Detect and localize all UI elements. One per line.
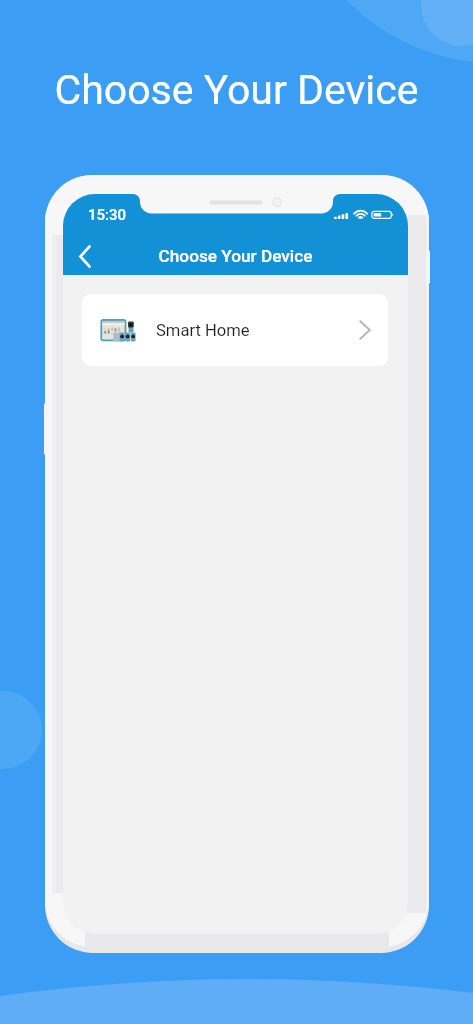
staticText: 15:30 bbox=[88, 206, 127, 224]
button[interactable]: Back bbox=[63, 232, 107, 280]
staticText: Choose Your Device bbox=[85, 246, 386, 266]
staticText: Smart Home bbox=[156, 321, 250, 340]
staticText: Choose Your Device bbox=[0, 66, 473, 114]
button[interactable]: Smart Home bbox=[82, 294, 388, 366]
